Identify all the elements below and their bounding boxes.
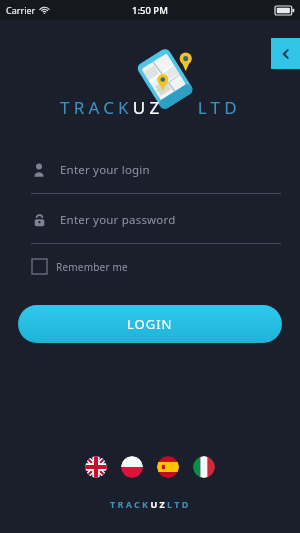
button[interactable]: UK	[85, 456, 107, 478]
staticText: Enter your login	[60, 162, 150, 178]
staticText: Enter your password	[60, 212, 176, 228]
button[interactable]: Poland	[121, 456, 143, 478]
button[interactable]: Italy	[193, 456, 215, 478]
button[interactable]: Back	[271, 38, 300, 69]
staticText: TRACKUZ LTD	[60, 96, 241, 119]
staticText: Carrier	[6, 4, 36, 16]
button[interactable]: Password field	[18, 210, 282, 244]
staticText: 1:50 PM	[132, 4, 168, 17]
staticText: LOGIN	[127, 315, 173, 333]
button[interactable]: Spain	[157, 456, 179, 478]
staticText: Remember me	[56, 260, 128, 274]
staticText: TRACKUZLTD	[110, 498, 191, 510]
button[interactable]: LOGIN	[18, 305, 282, 343]
button[interactable]: Remember me	[30, 257, 130, 276]
button[interactable]: Login field	[18, 160, 282, 194]
